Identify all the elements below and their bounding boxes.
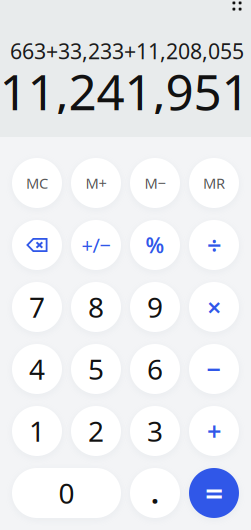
button[interactable]: 9 xyxy=(130,282,180,332)
button[interactable]: . xyxy=(130,468,180,518)
button[interactable]: MR xyxy=(189,158,239,208)
button[interactable]: 6 xyxy=(130,344,180,394)
staticText: 8 xyxy=(88,288,104,326)
staticText: 5 xyxy=(88,350,104,388)
staticText: 7 xyxy=(29,288,45,326)
staticText: = xyxy=(205,472,223,514)
staticText: 3 xyxy=(147,412,163,450)
staticText: − xyxy=(206,352,221,386)
staticText: 4 xyxy=(29,350,45,388)
button[interactable]: % xyxy=(130,220,180,270)
button[interactable]: M− xyxy=(130,158,180,208)
button[interactable]: Delete xyxy=(12,220,62,270)
staticText: MR xyxy=(203,173,225,193)
staticText: + xyxy=(207,414,221,448)
staticText: 663+33,233+11,208,055 xyxy=(10,37,244,65)
button[interactable]: + xyxy=(189,406,239,456)
button[interactable]: 3 xyxy=(130,406,180,456)
button[interactable]: Menu xyxy=(226,0,248,16)
button[interactable]: − xyxy=(189,344,239,394)
button[interactable]: 8 xyxy=(71,282,121,332)
staticText: 6 xyxy=(147,350,163,388)
button[interactable]: = xyxy=(189,468,239,518)
staticText: 2 xyxy=(88,412,104,450)
button[interactable]: ÷ xyxy=(189,220,239,270)
button[interactable]: +/− xyxy=(71,220,121,270)
staticText: 11,241,951 xyxy=(0,58,249,124)
staticText: ÷ xyxy=(207,228,221,262)
staticText: . xyxy=(151,474,159,512)
staticText: 0 xyxy=(58,474,74,512)
staticText: M− xyxy=(144,173,165,193)
button[interactable]: 4 xyxy=(12,344,62,394)
staticText: 9 xyxy=(147,288,163,326)
staticText: 1 xyxy=(29,412,45,450)
button[interactable]: MC xyxy=(12,158,62,208)
button[interactable]: 7 xyxy=(12,282,62,332)
button[interactable]: M+ xyxy=(71,158,121,208)
staticText: × xyxy=(207,290,221,324)
button[interactable]: 0 xyxy=(12,468,121,518)
staticText: +/− xyxy=(81,232,110,258)
staticText: % xyxy=(145,231,164,259)
staticText: MC xyxy=(26,173,48,193)
button[interactable]: × xyxy=(189,282,239,332)
button[interactable]: 2 xyxy=(71,406,121,456)
button[interactable]: 1 xyxy=(12,406,62,456)
staticText: M+ xyxy=(85,173,106,193)
button[interactable]: 5 xyxy=(71,344,121,394)
